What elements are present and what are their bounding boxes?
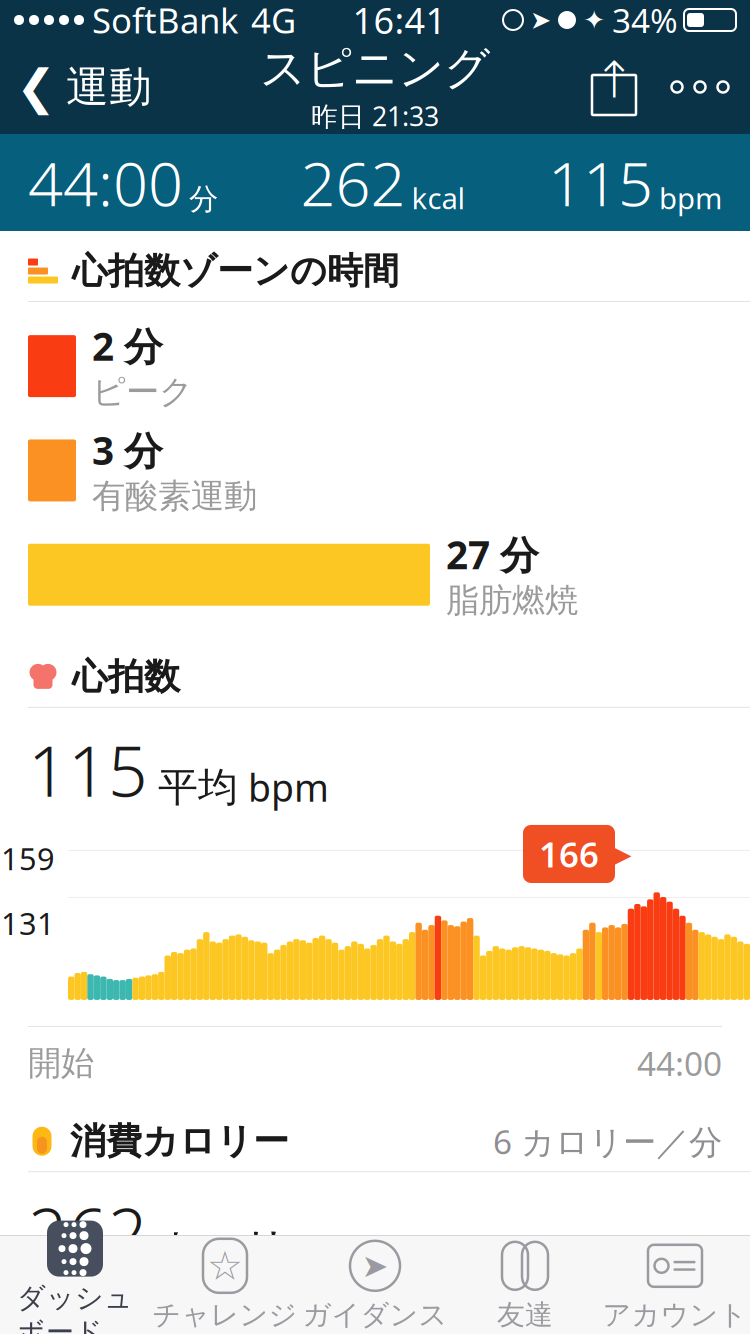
staticText: ➤ [361,1248,388,1284]
staticText: bpm [659,178,722,217]
staticText: 115 [548,142,653,223]
staticText: 平均 [158,763,238,812]
staticText: ❮ [16,60,56,114]
staticText: kcal [411,178,465,217]
staticText: 心拍数 [72,655,180,699]
staticText: 34% [612,0,678,42]
staticText: ガイダンス [302,1298,447,1332]
staticText: 有酸素運動 [92,476,257,516]
staticText: カロリー [156,1222,331,1274]
staticText: 262 [300,142,405,223]
staticText: 昨日 21:33 [311,98,439,133]
staticText: 44:00 [637,1041,722,1085]
staticText: ✦ [583,5,605,35]
staticText: 262 [28,1186,148,1278]
staticText: 6 [28,1314,45,1334]
button[interactable]: その他 [650,40,750,134]
staticText: 166 [539,831,599,877]
staticText: 運動 [66,61,152,113]
button[interactable]: ☆ [150,1236,300,1334]
button[interactable]: アカウント [600,1236,750,1334]
staticText: ▶ [609,837,632,871]
staticText: 開始 [28,1043,94,1083]
staticText: スピニング [260,40,490,96]
button[interactable]: 友達 [450,1236,600,1334]
staticText: 16:41 [352,0,446,44]
staticText: ☆ [207,1243,243,1288]
staticText: 分 [189,181,218,217]
button[interactable]: ダッシュボード [0,1236,150,1334]
staticText: bpm [248,762,329,812]
staticText: SoftBank [92,0,239,43]
staticText: 115 [28,724,148,816]
staticText: アカウント [602,1298,747,1332]
button[interactable]: ❮ [0,40,168,134]
staticText: 159 [1,838,55,879]
staticText: ダッシュボード [17,1281,133,1334]
button[interactable]: ➤ [300,1236,450,1334]
staticText: チャレンジ [152,1298,297,1332]
staticText: 脂肪燃焼 [446,580,578,621]
staticText: 友達 [497,1298,553,1332]
staticText: 2 分 [92,320,163,371]
staticText: ピーク [92,371,193,412]
button[interactable]: 共有 [578,40,650,134]
staticText: 131 [1,903,55,943]
staticText: ↑ [593,51,635,109]
staticText: 心拍数ゾーンの時間 [72,249,399,293]
staticText: ➤ [530,6,551,34]
staticText: 6 カロリー／分 [493,1119,722,1163]
staticText: 44:00 [28,142,183,223]
staticText: 消費カロリー [70,1119,289,1163]
staticText: 4G [251,0,296,43]
staticText: 27 分 [446,529,539,580]
staticText: 3 分 [92,424,163,476]
